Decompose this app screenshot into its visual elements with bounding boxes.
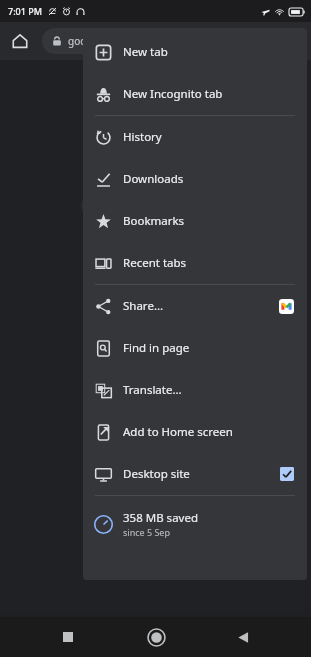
staticText: Add to Home screen [123, 424, 299, 440]
staticText: Recent tabs [123, 255, 299, 271]
staticText: 7:01 PM [8, 5, 42, 17]
staticText: History [123, 129, 299, 145]
staticText: Translate… [123, 382, 299, 398]
button[interactable]: Add to Home screen [83, 411, 307, 453]
staticText: How Search works [144, 640, 196, 648]
button[interactable]: Bookmarks [83, 200, 307, 242]
button[interactable]: Recent apps [48, 617, 88, 657]
button[interactable]: Desktop site [83, 453, 307, 495]
staticText: Find in page [123, 340, 299, 356]
staticText: since 5 Sep [123, 526, 170, 538]
staticText: Desktop site [123, 466, 280, 482]
button[interactable]: History [83, 116, 307, 158]
staticText: New Incognito tab [123, 86, 299, 102]
button[interactable]: Find in page [83, 327, 307, 369]
staticText: Bookmarks [123, 213, 299, 229]
staticText: Share… [123, 298, 279, 314]
button[interactable]: Translate… [83, 369, 307, 411]
button[interactable]: Share… [83, 285, 307, 327]
staticText: Downloads [123, 171, 299, 187]
button[interactable]: Home [136, 617, 176, 657]
button[interactable]: New Incognito tab [83, 73, 307, 115]
button[interactable]: 358 MB saved [83, 502, 307, 546]
button[interactable]: New tab [83, 31, 307, 73]
staticText: New tab [123, 44, 299, 60]
button[interactable]: Recent tabs [83, 242, 307, 284]
button[interactable]: Back [223, 617, 263, 657]
button[interactable]: Downloads [83, 158, 307, 200]
staticText: 358 MB saved [123, 510, 198, 526]
staticText: Advertising [69, 640, 101, 648]
staticText: Terms [247, 640, 265, 648]
staticText: google.com [68, 34, 124, 48]
